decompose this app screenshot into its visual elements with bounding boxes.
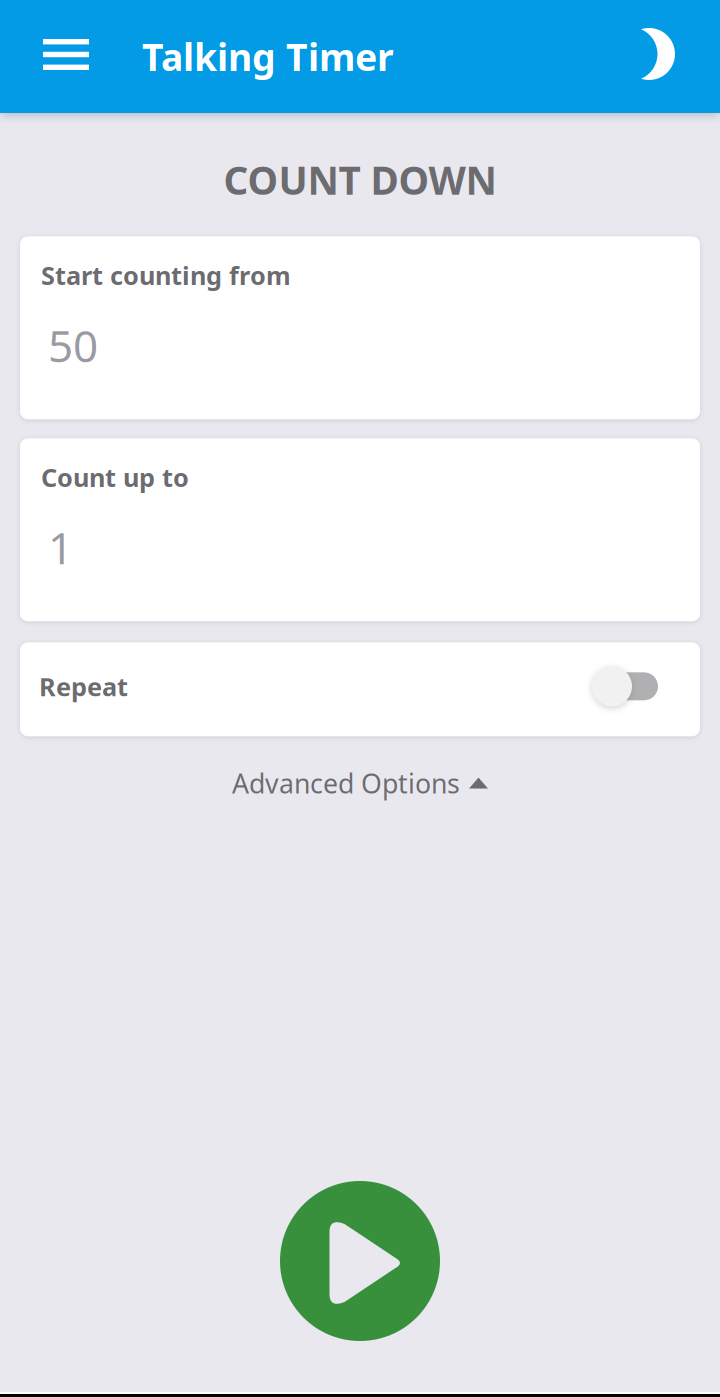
staticText: Count up to	[41, 460, 189, 494]
staticText: 1	[48, 518, 73, 576]
button[interactable]: Repeat	[592, 656, 658, 716]
staticText: Start counting from	[41, 258, 291, 292]
staticText: Talking Timer	[142, 32, 394, 81]
button[interactable]: Advanced Options	[212, 736, 508, 822]
staticText: COUNT DOWN	[223, 154, 496, 205]
button[interactable]: Start timer	[280, 1181, 440, 1341]
button[interactable]: Menu	[0, 0, 142, 113]
staticText: 50	[48, 316, 98, 374]
staticText: Advanced Options	[232, 765, 460, 801]
button[interactable]: Night mode	[610, 0, 720, 114]
staticText: Repeat	[39, 669, 128, 703]
